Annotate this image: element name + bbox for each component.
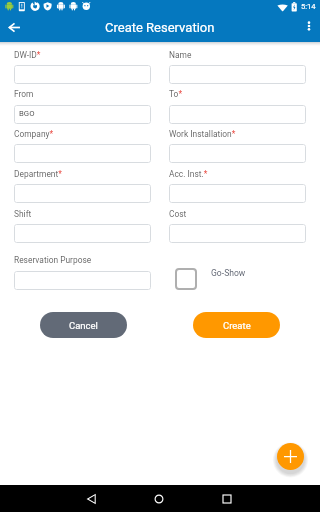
staticText: Work Installation* xyxy=(169,129,236,139)
staticText: Go-Show xyxy=(211,268,246,278)
button[interactable]: Go-Show xyxy=(175,268,232,290)
staticText: Cost xyxy=(169,209,187,219)
button[interactable]: Recent apps xyxy=(220,492,233,505)
staticText: Create Reservation xyxy=(105,20,215,35)
button[interactable] xyxy=(14,271,151,290)
button[interactable] xyxy=(169,65,306,84)
button[interactable]: Home xyxy=(152,492,165,505)
button[interactable]: Add xyxy=(277,443,304,470)
button[interactable] xyxy=(169,105,306,124)
staticText: Shift xyxy=(14,209,32,219)
staticText: From xyxy=(14,89,34,99)
button[interactable] xyxy=(14,65,151,84)
button[interactable]: Back xyxy=(85,492,98,505)
staticText: Company* xyxy=(14,129,54,139)
button[interactable] xyxy=(14,144,151,163)
staticText: Acc. Inst.* xyxy=(169,169,208,179)
button[interactable]: Create xyxy=(193,312,280,338)
staticText: BGO xyxy=(19,109,35,118)
staticText: Name xyxy=(169,50,192,60)
button[interactable]: Back xyxy=(4,17,24,37)
staticText: 5:14 xyxy=(301,2,316,11)
staticText: Department* xyxy=(14,169,62,179)
button[interactable]: Cancel xyxy=(40,312,127,338)
button[interactable] xyxy=(14,184,151,203)
button[interactable] xyxy=(169,224,306,243)
staticText: Create xyxy=(223,320,251,331)
button[interactable]: BGO xyxy=(14,105,151,124)
staticText: Reservation Purpose xyxy=(14,255,92,265)
staticText: Cancel xyxy=(69,320,98,331)
button[interactable] xyxy=(169,144,306,163)
button[interactable] xyxy=(14,224,151,243)
button[interactable]: More options xyxy=(300,17,318,35)
staticText: DW-ID* xyxy=(14,50,41,60)
button[interactable] xyxy=(169,184,306,203)
staticText: To* xyxy=(169,89,182,99)
